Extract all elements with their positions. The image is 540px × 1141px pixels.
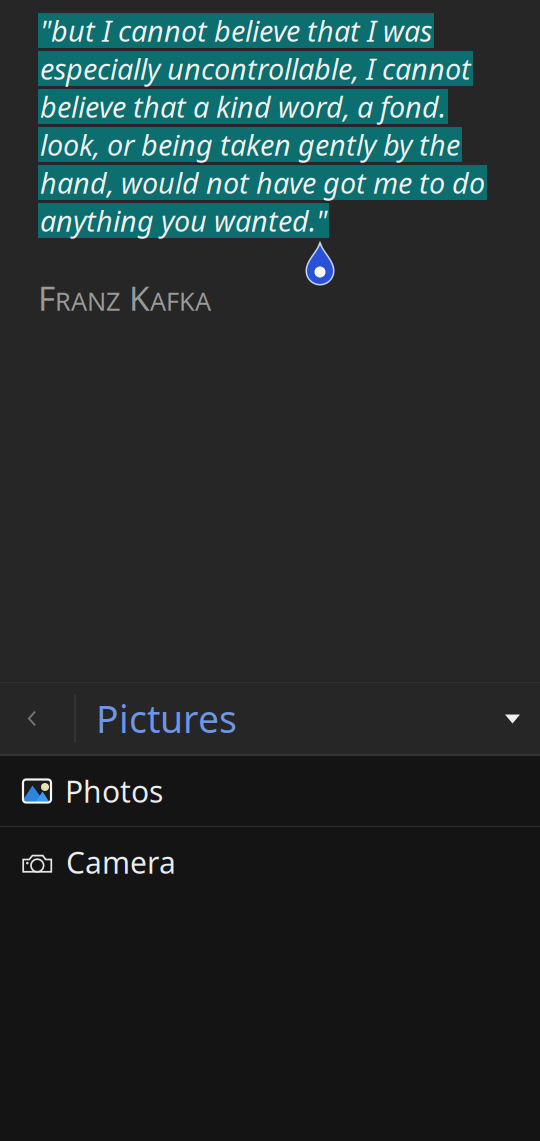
button[interactable]: Camera: [0, 827, 540, 897]
staticText: K: [129, 275, 150, 320]
staticText: Camera: [66, 842, 176, 882]
staticText: K: [179, 284, 195, 318]
staticText: anything you wanted.": [40, 201, 327, 240]
staticText: A: [150, 284, 166, 318]
staticText: believe that a kind word, a fond.: [40, 87, 446, 126]
button[interactable]: Back: [0, 683, 68, 754]
staticText: look, or being taken gently by the: [40, 125, 460, 164]
staticText: Z: [106, 284, 120, 318]
staticText: F: [166, 284, 179, 318]
staticText: Pictures: [96, 693, 237, 744]
staticText: A: [71, 284, 87, 318]
staticText: N: [87, 284, 106, 318]
button[interactable]: Photos: [0, 756, 540, 826]
staticText: F: [38, 275, 55, 320]
staticText: Photos: [65, 771, 163, 811]
staticText: A: [195, 284, 211, 318]
button[interactable]: More options: [488, 683, 538, 754]
staticText: "but I cannot believe that I was: [40, 11, 432, 50]
staticText: hand, would not have got me to do: [40, 163, 485, 202]
staticText: especially uncontrollable, I cannot: [40, 49, 471, 88]
staticText: R: [55, 284, 71, 318]
